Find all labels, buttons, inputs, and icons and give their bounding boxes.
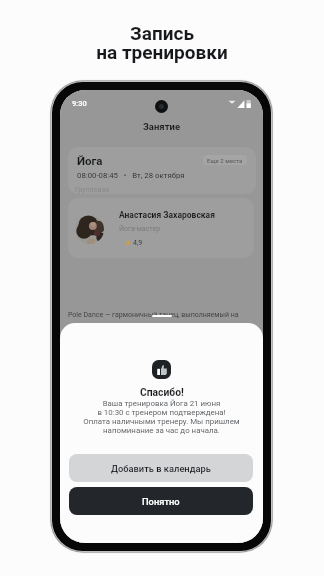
other: Status icons (228, 100, 251, 108)
staticText: Спасибо! (140, 386, 184, 398)
staticText: Понятно (142, 496, 180, 507)
staticText: Pole Dance — гармоничный танец, выполняе… (68, 311, 239, 319)
staticText: Занятие (143, 121, 181, 132)
button[interactable] (68, 147, 256, 194)
staticText: на тренировки (0, 41, 324, 63)
button[interactable]: Добавить в календарь (69, 454, 253, 482)
staticText: Добавить в календарь (111, 463, 211, 474)
staticText: Анастасия Захаровская (119, 210, 215, 220)
staticText: 08:00-08:45 • Вт, 28 октября (77, 171, 185, 180)
button[interactable]: Понятно (69, 487, 253, 515)
staticText: Ваша тренировка Йога 21 июня в 10:30 с т… (60, 399, 263, 435)
staticText: 9:30 (72, 99, 87, 108)
staticText: 4,9 (133, 239, 143, 247)
staticText: Запись (0, 22, 324, 44)
staticText: Йога (77, 154, 103, 167)
button[interactable] (68, 198, 254, 258)
button[interactable]: Занятие (60, 119, 263, 133)
staticText: Еще 2 места (207, 157, 243, 164)
staticText: Групповая (75, 186, 110, 194)
staticText: Йога-мастер (119, 225, 161, 233)
